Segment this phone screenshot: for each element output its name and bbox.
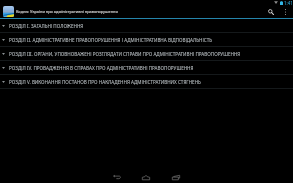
button[interactable]: РОЗДІЛ III. ОРГАНИ, УПОВНОВАЖЕНІ РОЗГЛЯД… [0, 47, 293, 60]
button[interactable]: РОЗДІЛ V. ВИКОНАННЯ ПОСТАНОВ ПРО НАКЛАДЕ… [0, 75, 293, 88]
button[interactable]: Home [139, 171, 153, 183]
staticText: РОЗДІЛ III. ОРГАНИ, УПОВНОВАЖЕНІ РОЗГЛЯД… [9, 51, 241, 57]
button[interactable]: Back [110, 171, 124, 183]
staticText: РОЗДІЛ I. ЗАГАЛЬНІ ПОЛОЖЕННЯ [9, 23, 84, 29]
staticText: РОЗДІЛ II. АДМІНІСТРАТИВНЕ ПРАВОПОРУШЕНН… [9, 37, 212, 43]
button[interactable]: Search [263, 6, 278, 18]
staticText: РОЗДІЛ V. ВИКОНАННЯ ПОСТАНОВ ПРО НАКЛАДЕ… [9, 79, 201, 85]
button[interactable]: РОЗДІЛ II. АДМІНІСТРАТИВНЕ ПРАВОПОРУШЕНН… [0, 33, 293, 46]
button[interactable]: РОЗДІЛ I. ЗАГАЛЬНІ ПОЛОЖЕННЯ [0, 19, 293, 32]
button[interactable]: РОЗДІЛ IV. ПРОВАДЖЕННЯ В СПРАВАХ ПРО АДМ… [0, 61, 293, 74]
staticText: 1:41 [284, 0, 293, 6]
button[interactable]: More options [279, 6, 292, 18]
button[interactable]: Recent apps [169, 171, 183, 183]
staticText: Кодекс України про адміністративні право… [16, 9, 118, 14]
staticText: РОЗДІЛ IV. ПРОВАДЖЕННЯ В СПРАВАХ ПРО АДМ… [9, 65, 194, 71]
